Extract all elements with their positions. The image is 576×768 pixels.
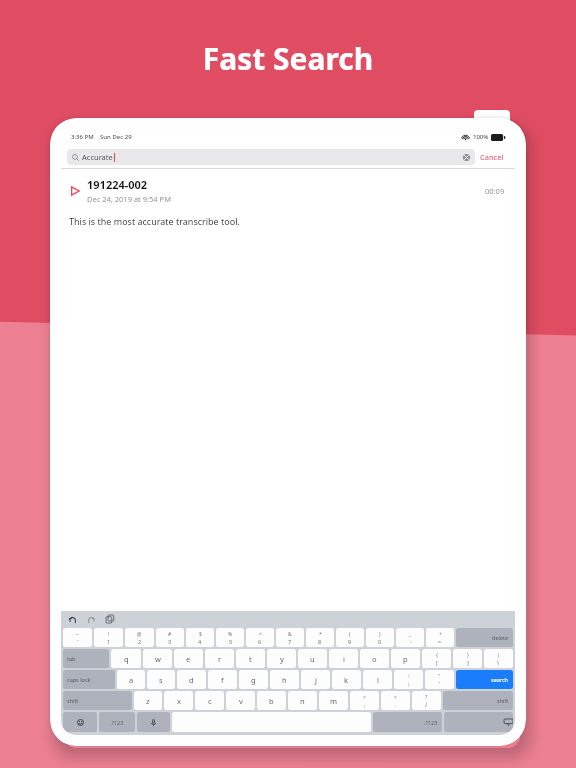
button[interactable]: Emoji [63, 712, 97, 732]
button[interactable]: .?123 [99, 712, 135, 732]
button[interactable]: Accurate [67, 149, 475, 165]
staticText: ' [439, 680, 441, 687]
button[interactable]: > [381, 691, 410, 710]
button[interactable]: tab [63, 649, 109, 668]
button[interactable]: l [363, 670, 392, 689]
button[interactable]: * [306, 628, 334, 647]
staticText: , [364, 701, 366, 708]
staticText: | [497, 652, 500, 659]
button[interactable]: b [257, 691, 286, 710]
button[interactable]: Undo [66, 613, 78, 625]
staticText: Accurate [82, 152, 113, 162]
button[interactable]: z [134, 691, 162, 710]
staticText: 2 [138, 638, 142, 645]
staticText: ? [425, 694, 428, 701]
button[interactable]: } [453, 649, 482, 668]
staticText: s [159, 675, 163, 685]
button[interactable]: < [350, 691, 379, 710]
staticText: r [218, 654, 222, 664]
staticText: p [403, 654, 408, 664]
staticText: 0 [378, 638, 382, 645]
button[interactable]: k [332, 670, 361, 689]
staticText: f [221, 675, 224, 685]
button[interactable]: i [329, 649, 358, 668]
button[interactable]: ^ [246, 628, 274, 647]
button[interactable]: y [267, 649, 296, 668]
staticText: ] [467, 659, 469, 666]
button[interactable]: shift [443, 691, 513, 710]
button[interactable]: & [276, 628, 304, 647]
button[interactable]: _ [396, 628, 424, 647]
button[interactable]: : [394, 670, 423, 689]
button[interactable]: + [426, 628, 454, 647]
staticText: - [410, 638, 412, 645]
button[interactable]: s [147, 670, 175, 689]
button[interactable]: c [195, 691, 224, 710]
staticText: l [377, 675, 379, 685]
button[interactable]: f [208, 670, 237, 689]
button[interactable]: shift [63, 691, 132, 710]
staticText: 4 [198, 638, 202, 645]
button[interactable]: w [143, 649, 172, 668]
staticText: k [344, 675, 349, 685]
button[interactable]: caps lock [63, 670, 115, 689]
button[interactable]: delete [456, 628, 513, 647]
button[interactable]: search [456, 670, 513, 689]
button[interactable]: n [288, 691, 317, 710]
staticText: Fast Search [0, 38, 576, 79]
other: Clear [463, 154, 470, 161]
button[interactable]: { [422, 649, 451, 668]
button[interactable]: v [226, 691, 255, 710]
staticText: > [394, 694, 397, 701]
button[interactable]: e [174, 649, 203, 668]
button[interactable]: Paste [104, 613, 116, 625]
staticText: d [189, 675, 194, 685]
button[interactable]: # [156, 628, 184, 647]
button[interactable]: Dictate [137, 712, 170, 732]
button[interactable]: u [298, 649, 327, 668]
button[interactable]: .?123 [373, 712, 442, 732]
button[interactable]: j [301, 670, 330, 689]
staticText: 9 [348, 638, 352, 645]
button[interactable]: q [111, 649, 141, 668]
staticText: caps lock [67, 676, 91, 683]
button[interactable]: Redo [85, 613, 97, 625]
button[interactable]: m [319, 691, 348, 710]
button[interactable]: ) [366, 628, 394, 647]
staticText: a [129, 675, 134, 685]
button[interactable]: | [484, 649, 513, 668]
staticText: 5 [229, 638, 233, 645]
button[interactable]: Hide keyboard [444, 712, 513, 732]
button[interactable]: p [391, 649, 420, 668]
button[interactable]: x [164, 691, 193, 710]
button[interactable]: h [270, 670, 299, 689]
staticText: ` [77, 638, 79, 645]
button[interactable]: a [117, 670, 145, 689]
staticText: v [239, 696, 243, 706]
button[interactable]: d [177, 670, 206, 689]
staticText: q [124, 654, 129, 664]
button[interactable]: % [216, 628, 244, 647]
staticText: w [155, 654, 161, 664]
button[interactable]: ? [412, 691, 441, 710]
button[interactable]: Cancel [475, 150, 509, 164]
staticText: @ [137, 631, 142, 638]
button[interactable]: " [425, 670, 454, 689]
staticText: b [269, 696, 274, 706]
button[interactable]: $ [186, 628, 214, 647]
button[interactable]: o [360, 649, 389, 668]
button[interactable]: ( [336, 628, 364, 647]
button[interactable]: t [236, 649, 265, 668]
button[interactable]: ! [94, 628, 123, 647]
button[interactable]: r [205, 649, 234, 668]
button[interactable]: g [239, 670, 268, 689]
staticText: _ [409, 631, 412, 638]
button[interactable]: @ [125, 628, 154, 647]
staticText: This is the most accurate transcribe too… [69, 215, 240, 227]
button[interactable]: ~ [63, 628, 92, 647]
staticText: shift [497, 697, 509, 704]
button[interactable]: Play [61, 169, 515, 233]
staticText: h [282, 675, 287, 685]
staticText: \ [497, 659, 500, 666]
